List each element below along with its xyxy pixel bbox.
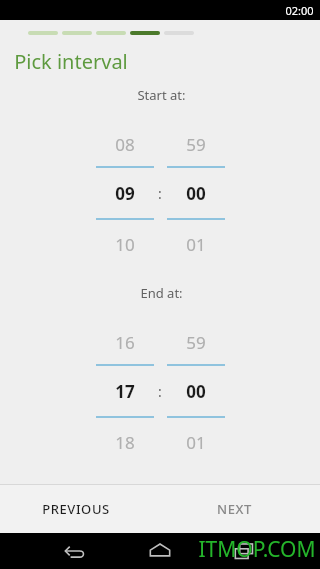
staticText: 09 bbox=[115, 182, 135, 204]
staticText: 00 bbox=[186, 380, 206, 402]
staticText: Pick interval bbox=[14, 48, 128, 75]
staticText: 08 bbox=[115, 133, 135, 155]
staticText: 59 bbox=[186, 133, 206, 155]
staticText: ITMOP.COM bbox=[198, 535, 316, 564]
button[interactable]: Home bbox=[142, 533, 178, 569]
button[interactable]: 00 bbox=[166, 380, 226, 402]
staticText: Start at: bbox=[137, 86, 186, 104]
staticText: 16 bbox=[115, 331, 135, 353]
staticText: 01 bbox=[186, 233, 206, 255]
staticText: 18 bbox=[115, 431, 135, 453]
staticText: 59 bbox=[186, 331, 206, 353]
button[interactable]: 17 bbox=[95, 380, 155, 402]
staticText: : bbox=[158, 184, 162, 203]
staticText: NEXT bbox=[217, 500, 252, 518]
staticText: 01 bbox=[186, 431, 206, 453]
button[interactable]: Recent apps bbox=[227, 533, 263, 569]
button[interactable]: PREVIOUS bbox=[0, 485, 160, 533]
staticText: 00 bbox=[186, 182, 206, 204]
staticText: End at: bbox=[140, 284, 183, 302]
staticText: 10 bbox=[115, 233, 135, 255]
button[interactable]: 00 bbox=[166, 182, 226, 204]
staticText: 02:00 bbox=[285, 3, 314, 18]
staticText: : bbox=[158, 382, 162, 401]
staticText: PREVIOUS bbox=[42, 500, 110, 518]
button[interactable]: NEXT bbox=[160, 485, 320, 533]
button[interactable]: 09 bbox=[95, 182, 155, 204]
button[interactable]: Back bbox=[57, 533, 93, 569]
staticText: 17 bbox=[115, 380, 135, 402]
